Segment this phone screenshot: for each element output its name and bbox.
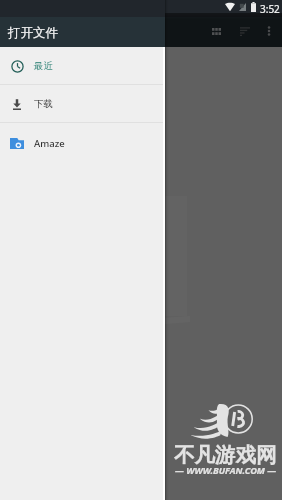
staticText: 不凡游戏网 <box>174 442 277 468</box>
staticText: 打开文件 <box>8 25 58 41</box>
button[interactable]: Grid view <box>202 16 230 46</box>
staticText: Amaze <box>34 137 65 150</box>
button[interactable]: Sort <box>231 16 259 46</box>
button[interactable]: Amaze <box>0 124 163 162</box>
button[interactable]: More options <box>255 16 282 46</box>
staticText: 最近 <box>34 60 53 72</box>
button[interactable]: 下载 <box>0 85 163 123</box>
button[interactable]: 最近 <box>0 47 163 85</box>
staticText: 3:52 <box>260 2 280 16</box>
staticText: — WWW.BUFAN.COM — <box>175 464 277 477</box>
staticText: 下载 <box>34 98 53 110</box>
